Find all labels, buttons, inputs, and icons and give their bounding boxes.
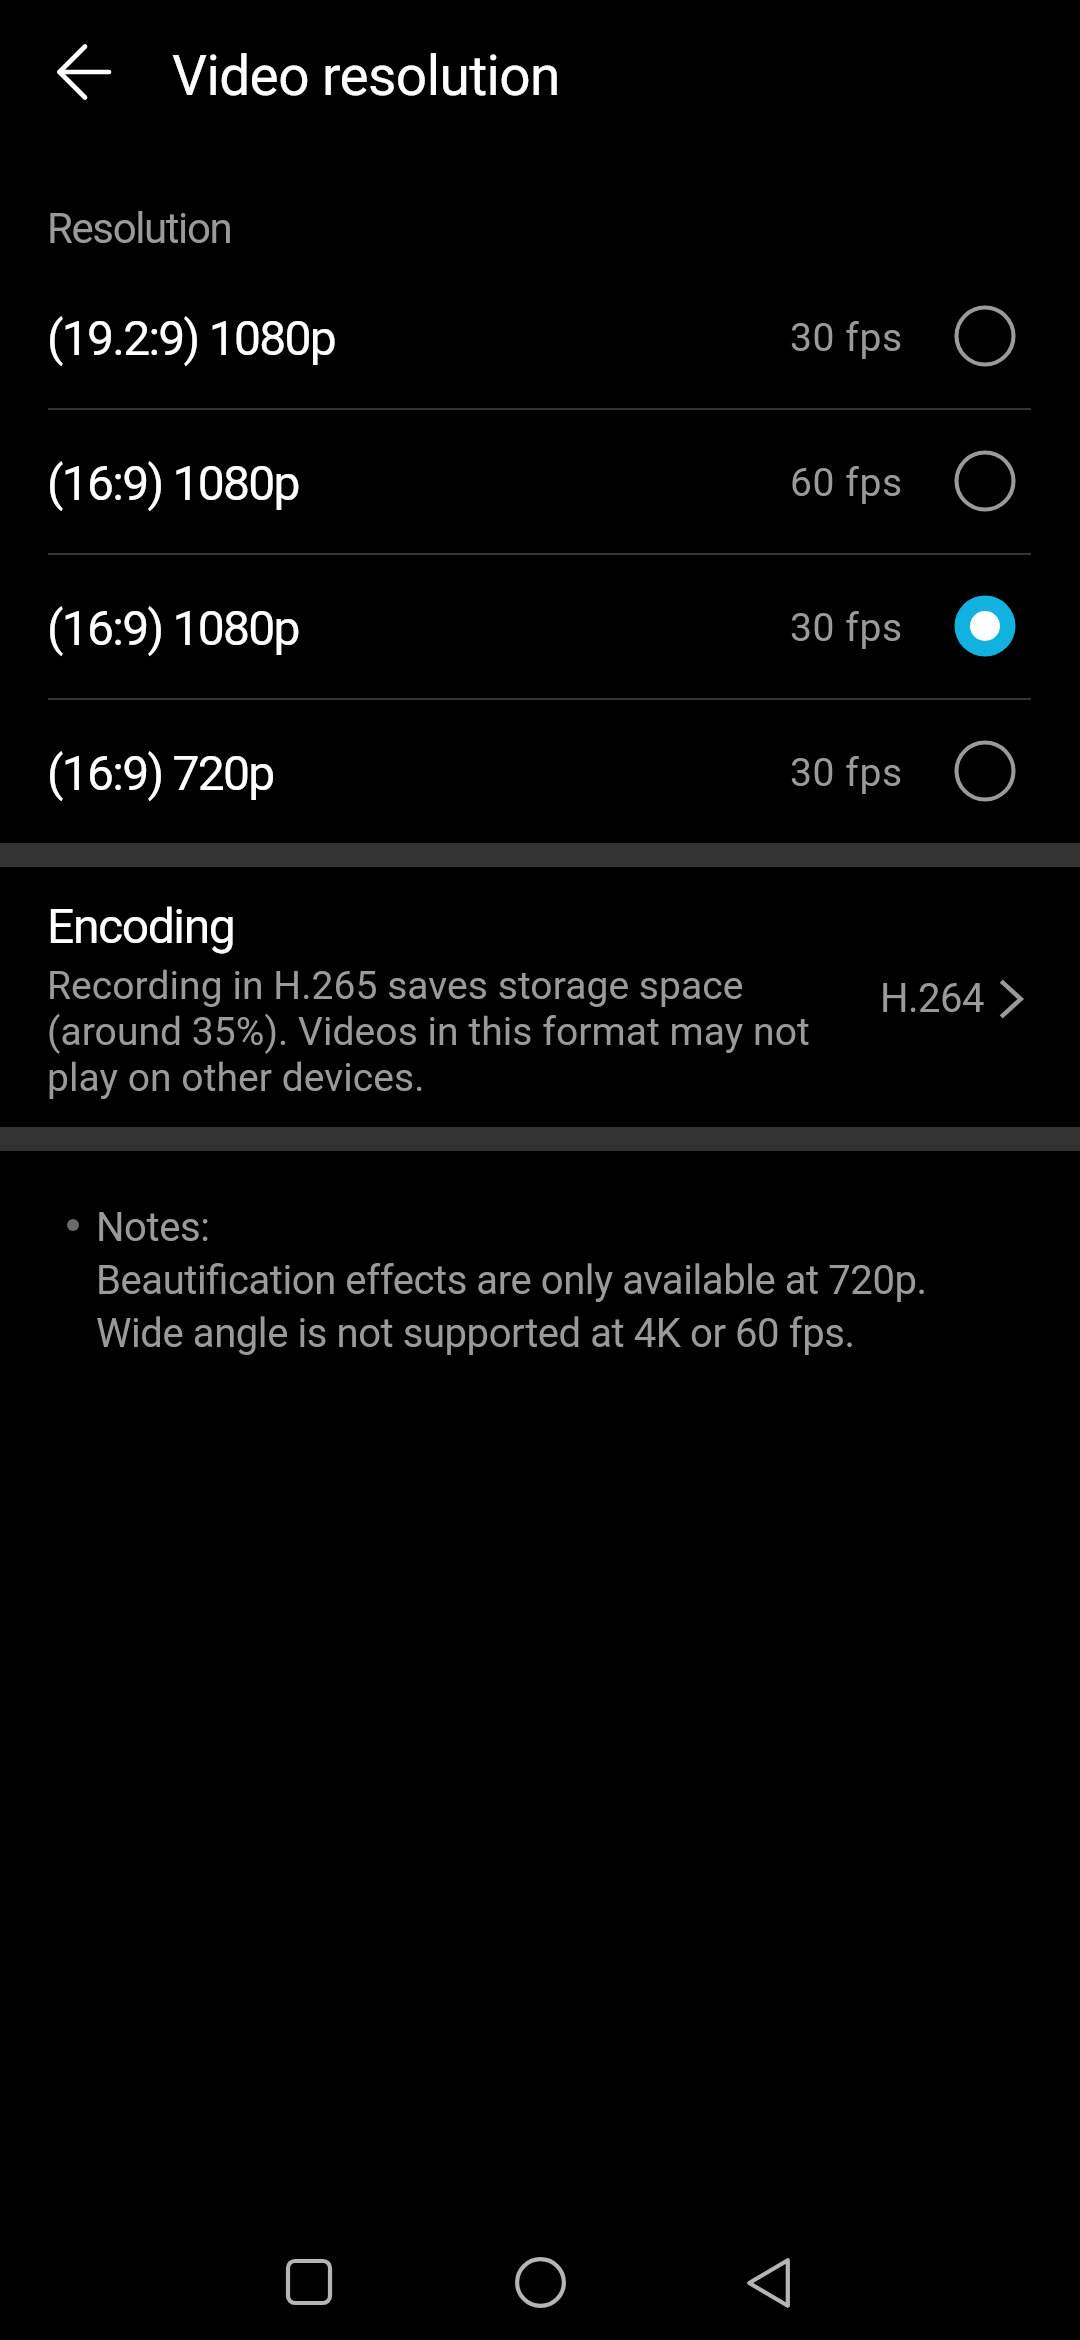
staticText: (16:9) 720p: [47, 745, 274, 801]
button[interactable]: (19.2:9) 1080p: [0, 263, 1080, 408]
staticText: (16:9) 1080p: [47, 455, 299, 511]
button[interactable]: Home: [480, 2222, 600, 2340]
button[interactable]: Encoding: [0, 867, 1080, 1127]
staticText: 30 fps: [790, 750, 903, 796]
staticText: Resolution: [47, 204, 232, 253]
staticText: Notes: Beautification effects are only a…: [96, 1204, 927, 1357]
staticText: 30 fps: [790, 605, 903, 651]
staticText: H.264: [880, 975, 985, 1022]
staticText: Video resolution: [172, 44, 560, 108]
button[interactable]: (16:9) 720p: [0, 698, 1080, 843]
staticText: Encoding: [47, 898, 235, 954]
button[interactable]: (16:9) 1080p: [0, 408, 1080, 553]
staticText: (19.2:9) 1080p: [47, 310, 336, 366]
staticText: Recording in H.265 saves storage space (…: [47, 963, 817, 1101]
button[interactable]: (16:9) 1080p: [0, 553, 1080, 698]
button[interactable]: Recent apps: [249, 2222, 369, 2340]
staticText: (16:9) 1080p: [47, 600, 299, 656]
button[interactable]: Back: [32, 20, 136, 124]
staticText: 60 fps: [790, 460, 903, 506]
button[interactable]: Back: [708, 2223, 828, 2340]
staticText: 30 fps: [790, 315, 903, 361]
